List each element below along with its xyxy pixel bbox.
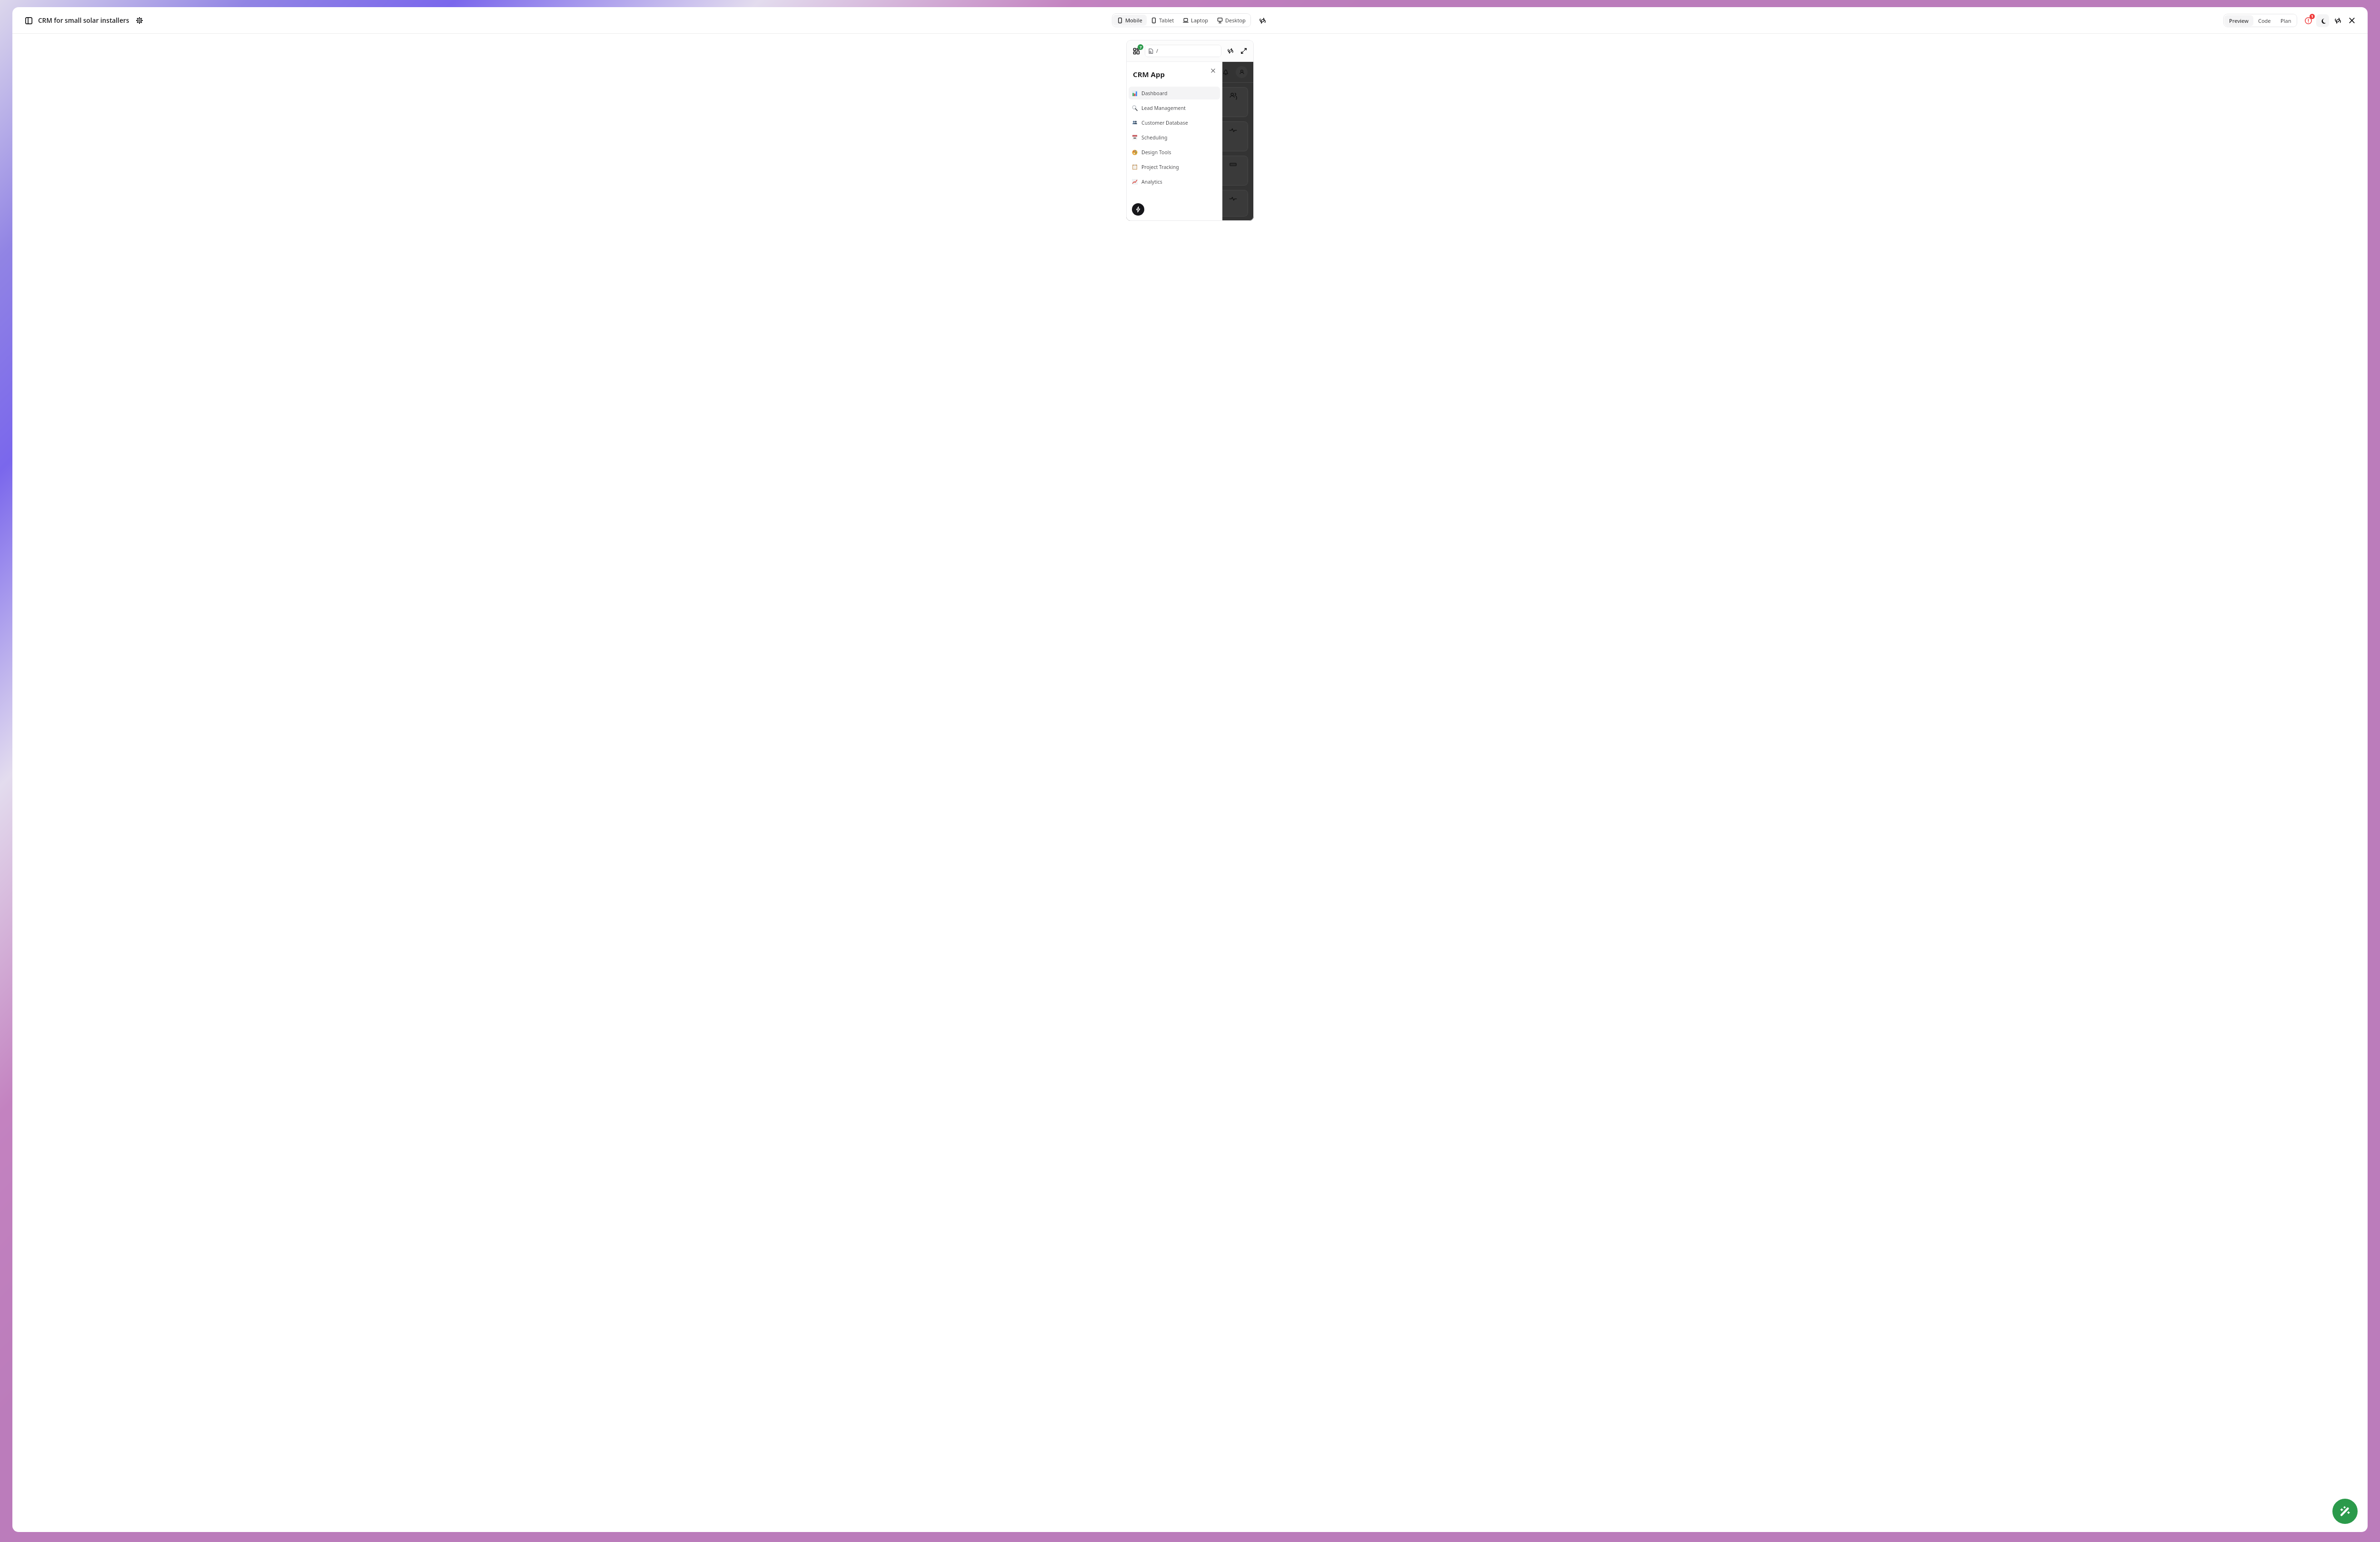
button[interactable]: Code <box>2253 15 2276 26</box>
staticText: Analytics <box>1141 178 1162 185</box>
button[interactable]: / <box>1145 45 1221 57</box>
staticText: CRM App <box>1133 69 1165 79</box>
button[interactable]: Settings <box>134 15 145 26</box>
button[interactable]: Dashboard <box>1129 87 1220 99</box>
button[interactable]: Components <box>1131 46 1141 56</box>
button[interactable]: Close menu <box>1208 66 1218 75</box>
staticText: Desktop <box>1225 17 1246 24</box>
button[interactable]: Refresh <box>2331 14 2344 27</box>
button[interactable]: Close <box>2346 14 2358 27</box>
staticText: Customer Database <box>1141 119 1188 126</box>
staticText: Lead Management <box>1141 105 1186 111</box>
button[interactable]: Plan <box>2276 15 2296 26</box>
button[interactable]: Preview <box>2224 15 2253 26</box>
staticText: Project Tracking <box>1141 164 1179 170</box>
staticText: 7 <box>1140 45 1142 49</box>
button[interactable]: Analytics <box>1129 175 1220 188</box>
button[interactable] <box>1132 156 1248 186</box>
staticText: Mobile <box>1125 17 1142 24</box>
staticText: Plan <box>2281 17 2291 24</box>
button[interactable]: Reload <box>1257 15 1268 26</box>
button[interactable] <box>1132 87 1248 117</box>
button[interactable]: Customer Database <box>1129 116 1220 129</box>
button[interactable]: Scheduling <box>1129 131 1220 144</box>
staticText: Preview <box>2229 17 2249 24</box>
button[interactable]: Actions <box>1132 203 1144 216</box>
staticText: CRM for small solar installers <box>38 16 129 25</box>
button[interactable]: Reload preview <box>1225 46 1236 56</box>
button[interactable]: Laptop <box>1179 15 1213 26</box>
button[interactable]: Dark mode <box>2316 14 2329 27</box>
staticText: 1 <box>2311 14 2313 19</box>
staticText: Code <box>2258 17 2271 24</box>
button[interactable]: Tablet <box>1147 15 1179 26</box>
button[interactable]: Desktop <box>1213 15 1250 26</box>
staticText: Dashboard <box>1141 90 1168 97</box>
button[interactable]: Mobile <box>1113 15 1147 26</box>
button[interactable]: 1 error <box>2302 14 2314 27</box>
staticText: / <box>1156 48 1158 54</box>
button[interactable] <box>1132 190 1248 217</box>
button[interactable]: Project Tracking <box>1129 160 1220 173</box>
staticText: Laptop <box>1191 17 1209 24</box>
staticText: Design Tools <box>1141 149 1171 156</box>
button[interactable]: Design Tools <box>1129 146 1220 158</box>
staticText: Scheduling <box>1141 134 1168 141</box>
button[interactable]: Expand <box>1239 46 1249 56</box>
button[interactable]: AI assist <box>2332 1499 2358 1524</box>
button[interactable]: Lead Management <box>1129 101 1220 114</box>
button[interactable]: Toggle sidebar <box>22 14 35 27</box>
staticText: Tablet <box>1159 17 1174 24</box>
button[interactable] <box>1132 121 1248 151</box>
